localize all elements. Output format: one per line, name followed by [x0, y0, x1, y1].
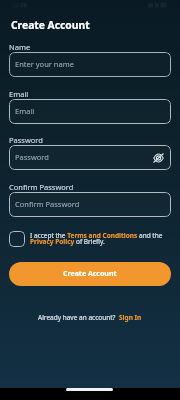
button[interactable]: Enter your name [9, 52, 171, 77]
staticText: Confirm Password [15, 199, 80, 209]
button[interactable]: Sign In [118, 311, 143, 324]
button[interactable]: Password [9, 145, 171, 170]
staticText: Name [9, 42, 31, 52]
staticText: Password [15, 152, 49, 162]
button[interactable]: Hide password [151, 151, 165, 165]
staticText: Email [15, 106, 35, 116]
staticText: Already have an account? [38, 313, 118, 322]
staticText: Create Account [11, 18, 90, 32]
button[interactable]: Confirm Password [9, 192, 171, 217]
staticText: Confirm Password [9, 182, 74, 192]
staticText: Email [9, 89, 29, 99]
button[interactable]: I accept the Terms and Conditions and th… [9, 231, 167, 247]
button[interactable]: Email [9, 99, 171, 124]
button[interactable]: Create Account [9, 262, 171, 286]
staticText: Enter your name [15, 59, 74, 69]
staticText: Sign In [119, 313, 142, 322]
staticText: I accept the Terms and Conditions and th… [30, 231, 167, 246]
staticText: Create Account [63, 269, 117, 279]
staticText: Password [9, 135, 43, 145]
